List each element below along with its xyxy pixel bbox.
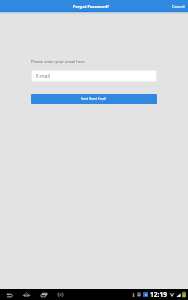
- button[interactable]: E-mail: [31, 70, 157, 82]
- staticText: Forgot Password?: [73, 4, 110, 10]
- staticText: Please enter your email here: [31, 59, 85, 64]
- button[interactable]: Back: [4, 289, 14, 300]
- button[interactable]: Cancel: [167, 1, 188, 11]
- staticText: Cancel: [172, 4, 185, 9]
- button[interactable]: Send Reset Email: [31, 94, 157, 104]
- button[interactable]: Recent apps: [39, 289, 49, 300]
- button[interactable]: Home: [21, 289, 31, 300]
- staticText: E-mail: [36, 73, 50, 80]
- staticText: Send Reset Email: [81, 97, 107, 101]
- staticText: 12:19: [150, 290, 167, 299]
- button[interactable]: Screenshot: [55, 289, 65, 300]
